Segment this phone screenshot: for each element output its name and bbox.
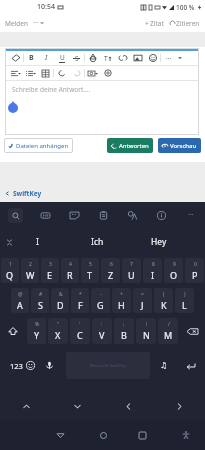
button[interactable]: Schreibe deine Antwort.... [5, 81, 199, 135]
button[interactable]: - [91, 288, 110, 313]
button[interactable]: Home [93, 425, 113, 445]
button[interactable]: Symbols [157, 350, 171, 381]
button[interactable]: 0 [185, 258, 204, 283]
staticText: 2 [29, 261, 32, 268]
button[interactable]: right [154, 392, 205, 420]
staticText: 100 % [176, 3, 195, 12]
button[interactable]: Format [39, 51, 54, 65]
button[interactable]: 3 [41, 258, 59, 283]
button[interactable]: 6 [101, 258, 120, 283]
button[interactable]: Backspace [179, 316, 205, 346]
button[interactable]: left [103, 392, 154, 420]
button[interactable]: Back [50, 425, 70, 445]
button[interactable]: ; [114, 318, 134, 344]
button[interactable]: % [27, 318, 46, 344]
staticText: + [120, 291, 123, 298]
staticText: ; [123, 321, 125, 328]
button[interactable]: Close suggestions [1, 230, 17, 254]
button[interactable]: up [0, 392, 52, 420]
button[interactable]: Format [145, 51, 160, 65]
button[interactable]: ) [175, 288, 194, 313]
button[interactable]: 1 [1, 258, 19, 283]
button[interactable]: Shift [0, 316, 26, 346]
button[interactable]: + [145, 19, 164, 28]
staticText: U [128, 269, 135, 281]
button[interactable]: Format [8, 66, 23, 80]
button[interactable]: Format [23, 66, 38, 80]
staticText: 5 [89, 261, 92, 268]
button[interactable]: " [48, 318, 68, 344]
staticText: 4 [69, 261, 72, 268]
button[interactable]: & [51, 288, 69, 313]
button[interactable]: 5 [81, 258, 99, 283]
button[interactable]: 9 [164, 258, 183, 283]
button[interactable]: Format [115, 51, 130, 65]
button[interactable]: Format [100, 66, 115, 80]
button[interactable]: More [33, 18, 44, 28]
button[interactable]: Expand toolbar [176, 51, 184, 65]
button[interactable]: Format [8, 51, 23, 65]
button[interactable]: ' [70, 318, 90, 344]
button[interactable]: 7 [122, 258, 141, 283]
button[interactable]: Vorschau [158, 138, 201, 153]
staticText: = [141, 291, 144, 298]
button[interactable]: Ich [67, 230, 128, 254]
button[interactable]: Accessibility [176, 425, 196, 445]
button[interactable]: ( [154, 288, 173, 313]
button[interactable]: 2 [21, 258, 39, 283]
button[interactable]: Format [161, 51, 176, 65]
staticText: D [57, 299, 64, 311]
button[interactable]: Melden [5, 19, 28, 28]
button[interactable]: Keyboard tool [38, 208, 53, 223]
button[interactable]: Hey [128, 230, 189, 254]
button[interactable]: Keyboard tool [154, 208, 169, 223]
button[interactable]: SwiftKey [4, 189, 42, 198]
button[interactable]: Format [24, 51, 39, 65]
button[interactable]: Format [69, 51, 84, 65]
staticText: W [26, 269, 35, 281]
button[interactable]: Format [54, 51, 69, 65]
staticText: G [97, 299, 104, 311]
staticText: ) [184, 291, 186, 298]
button[interactable]: Keyboard tool [67, 208, 82, 223]
button[interactable]: Antworten [107, 138, 153, 153]
button[interactable]: Format [38, 66, 53, 80]
button[interactable]: # [31, 288, 49, 313]
button[interactable]: Keyboard tool [96, 208, 111, 223]
button[interactable]: 8 [143, 258, 162, 283]
button[interactable]: ! [136, 318, 156, 344]
button[interactable]: Format [85, 51, 100, 65]
button[interactable]: Format [100, 51, 115, 65]
staticText: ··· [188, 210, 194, 220]
button[interactable]: Keyboard tool [8, 208, 23, 223]
staticText: SwiftKey [13, 189, 42, 198]
button[interactable]: Voice input [42, 350, 56, 381]
staticText: J [141, 299, 144, 311]
button[interactable]: Emoji [23, 350, 38, 381]
button[interactable]: Format [130, 51, 145, 65]
button[interactable]: / [158, 318, 178, 344]
button[interactable]: Recent apps [132, 425, 152, 445]
button[interactable]: * [71, 288, 89, 313]
button[interactable]: = [133, 288, 152, 313]
staticText: Z [108, 269, 114, 281]
button[interactable]: Keyboard tool [125, 208, 140, 223]
button[interactable]: Format [85, 66, 100, 80]
staticText: U [60, 53, 65, 62]
button[interactable]: : [92, 318, 112, 344]
button[interactable]: Enter [182, 350, 200, 381]
button[interactable]: Format [54, 66, 69, 80]
button[interactable]: Format [69, 66, 84, 80]
button[interactable]: Zitieren [170, 19, 200, 28]
button[interactable]: 4 [61, 258, 79, 283]
button[interactable]: + [112, 288, 131, 313]
button[interactable]: @ [11, 288, 29, 313]
button[interactable]: I [7, 230, 67, 254]
button[interactable]: More [176, 204, 205, 226]
staticText: E [47, 269, 53, 281]
button[interactable]: 123 [6, 350, 26, 381]
button[interactable]: Dateien anhängen [4, 138, 73, 153]
button[interactable]: down [52, 392, 103, 420]
staticText: : [101, 321, 103, 328]
